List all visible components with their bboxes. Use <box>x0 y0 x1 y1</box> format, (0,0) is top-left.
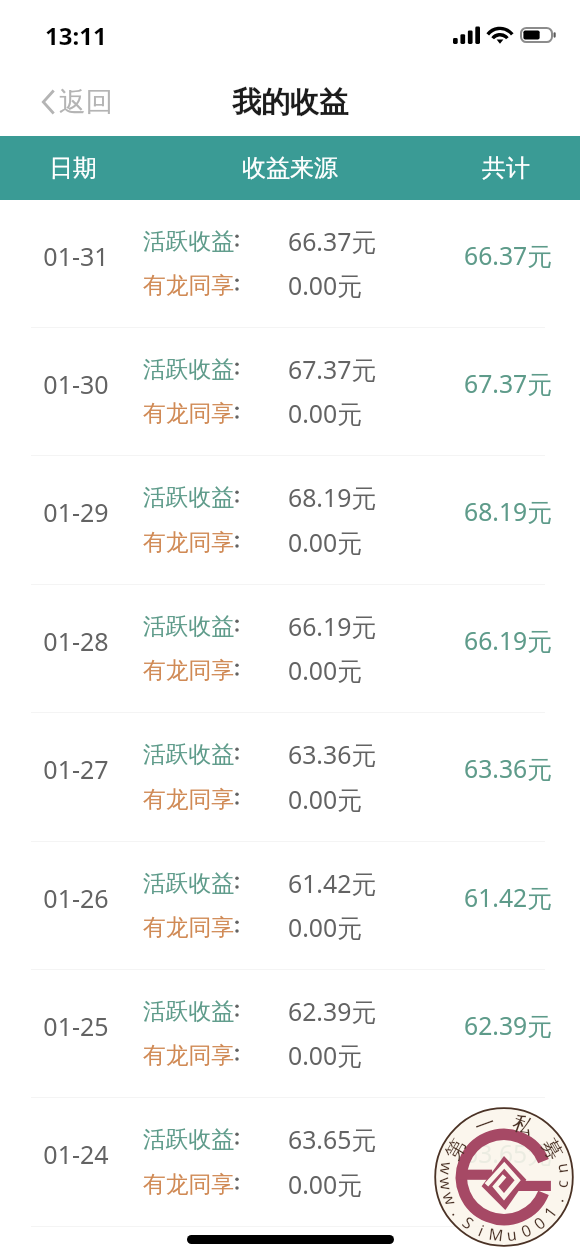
button[interactable] <box>0 690 580 818</box>
staticText: 活跃收益 <box>143 355 235 384</box>
staticText: 返回 <box>59 85 113 119</box>
staticText: 有龙同享 <box>143 785 235 814</box>
staticText: 68.19元 <box>464 495 552 529</box>
staticText: 活跃收益 <box>143 1125 235 1154</box>
staticText: 61.42元 <box>464 881 552 915</box>
staticText: 01-25 <box>43 1009 109 1043</box>
staticText: 有龙同享 <box>143 271 235 300</box>
staticText: 0.00元 <box>288 1038 362 1072</box>
staticText: 活跃收益 <box>143 869 235 898</box>
staticText: 0.00元 <box>288 910 362 944</box>
staticText: 0.00元 <box>288 396 362 430</box>
staticText: 有龙同享 <box>143 1041 235 1070</box>
staticText: 01-31 <box>43 239 109 273</box>
staticText: 01-29 <box>43 495 109 529</box>
staticText: 68.19元 <box>288 480 377 514</box>
button[interactable] <box>0 562 580 690</box>
staticText: 66.37元 <box>464 239 552 273</box>
button[interactable]: 收益来源 <box>190 136 390 200</box>
staticText: 67.37元 <box>464 367 552 401</box>
staticText: 63.65元 <box>464 1137 552 1171</box>
staticText: 日期 <box>49 153 97 183</box>
button[interactable] <box>0 177 580 305</box>
staticText: 62.39元 <box>288 994 377 1028</box>
staticText: 01-28 <box>43 624 109 658</box>
staticText: 0.00元 <box>288 653 362 687</box>
staticText: 活跃收益 <box>143 997 235 1026</box>
button[interactable] <box>0 947 580 1075</box>
button[interactable]: 返回 <box>34 77 121 127</box>
staticText: 共计 <box>482 153 530 183</box>
staticText: 0.00元 <box>288 782 362 816</box>
button[interactable]: 共计 <box>406 136 580 200</box>
staticText: 0.00元 <box>288 1167 362 1201</box>
staticText: 有龙同享 <box>143 1170 235 1199</box>
other: Watermark <box>434 1107 574 1247</box>
staticText: 0.00元 <box>288 525 362 559</box>
staticText: 66.37元 <box>288 224 377 258</box>
staticText: 63.36元 <box>464 752 552 786</box>
button[interactable] <box>0 1075 580 1203</box>
staticText: 61.42元 <box>288 866 377 900</box>
staticText: 有龙同享 <box>143 913 235 942</box>
button[interactable] <box>0 819 580 947</box>
staticText: 01-26 <box>43 881 109 915</box>
staticText: 0.00元 <box>288 268 362 302</box>
staticText: 67.37元 <box>288 352 377 386</box>
staticText: 63.36元 <box>288 737 377 771</box>
staticText: 活跃收益 <box>143 740 235 769</box>
staticText: 活跃收益 <box>143 612 235 641</box>
staticText: 我的收益 <box>232 84 348 121</box>
staticText: 01-30 <box>43 367 109 401</box>
staticText: 01-27 <box>43 752 109 786</box>
staticText: 收益来源 <box>242 153 338 183</box>
staticText: 01-24 <box>43 1137 109 1171</box>
staticText: 有龙同享 <box>143 528 235 557</box>
staticText: 有龙同享 <box>143 656 235 685</box>
button[interactable] <box>0 305 580 433</box>
staticText: 活跃收益 <box>143 483 235 512</box>
staticText: 13:11 <box>45 19 107 49</box>
staticText: 63.65元 <box>288 1122 377 1156</box>
staticText: 有龙同享 <box>143 399 235 428</box>
button[interactable]: 日期 <box>0 136 173 200</box>
staticText: 活跃收益 <box>143 227 235 256</box>
button[interactable] <box>0 433 580 561</box>
staticText: 62.39元 <box>464 1009 552 1043</box>
staticText: 66.19元 <box>288 609 377 643</box>
staticText: 66.19元 <box>464 624 552 658</box>
